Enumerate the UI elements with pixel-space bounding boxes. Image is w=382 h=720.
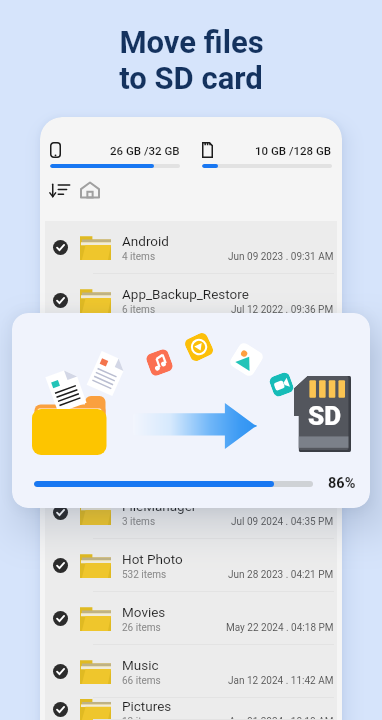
staticText: SD [308,401,342,431]
staticText: Music [122,657,159,673]
staticText: 86% [328,475,356,492]
staticText: DCIM [122,339,156,355]
button[interactable]: Documents [45,380,337,433]
button[interactable]: Music [45,645,337,698]
staticText: Apr 01 2024 . 10:10 AM [229,716,334,720]
staticText: FileManager [122,498,197,514]
staticText: 2 items [122,357,156,369]
staticText: 66 items [122,675,161,687]
button[interactable]: Hot Photo [45,539,337,592]
button[interactable]: Movies [45,592,337,645]
staticText: Movies [122,604,166,620]
staticText: Jul 09 2024 . 04:35 PM [231,516,334,528]
staticText: 26 GB /32 GB [110,144,180,157]
staticText: 532 items [122,569,167,581]
staticText: Aug 15 2023 . 11:02 AM [227,357,334,369]
staticText: 4 items [122,251,156,263]
staticText: 26 items [122,622,161,634]
button[interactable]: Home [79,179,101,201]
button[interactable]: App_Backup_Restore [45,274,337,327]
button[interactable]: Sort [49,179,71,201]
staticText: Jun 28 2023 . 04:21 PM [228,569,334,581]
button[interactable]: Pictures [45,698,337,720]
button[interactable]: DCIM [45,327,337,380]
staticText: 18 items [122,410,161,422]
staticText: Jul 12 2022 . 09:36 PM [231,304,334,316]
staticText: to SD card [119,60,263,96]
staticText: App_Backup_Restore [122,286,249,302]
staticText: 10 GB /128 GB [255,144,332,157]
staticText: May 22 2024 . 04:18 PM [226,622,334,634]
staticText: Pictures [122,698,172,714]
staticText: 6 items [122,304,156,316]
button[interactable]: FileManager [45,486,337,539]
staticText: Mar 03 2024 . 08:12 AM [227,410,334,422]
button[interactable]: Android [45,221,337,274]
staticText: 12 items [122,716,161,720]
staticText: Android [122,233,169,249]
staticText: 3 items [122,516,156,528]
staticText: Jan 12 2024 . 11:42 AM [228,675,334,687]
staticText: Hot Photo [122,551,183,567]
staticText: Move files [119,24,264,60]
staticText: Jun 09 2023 . 09:31 AM [228,251,334,263]
button[interactable]: Download [45,433,337,486]
